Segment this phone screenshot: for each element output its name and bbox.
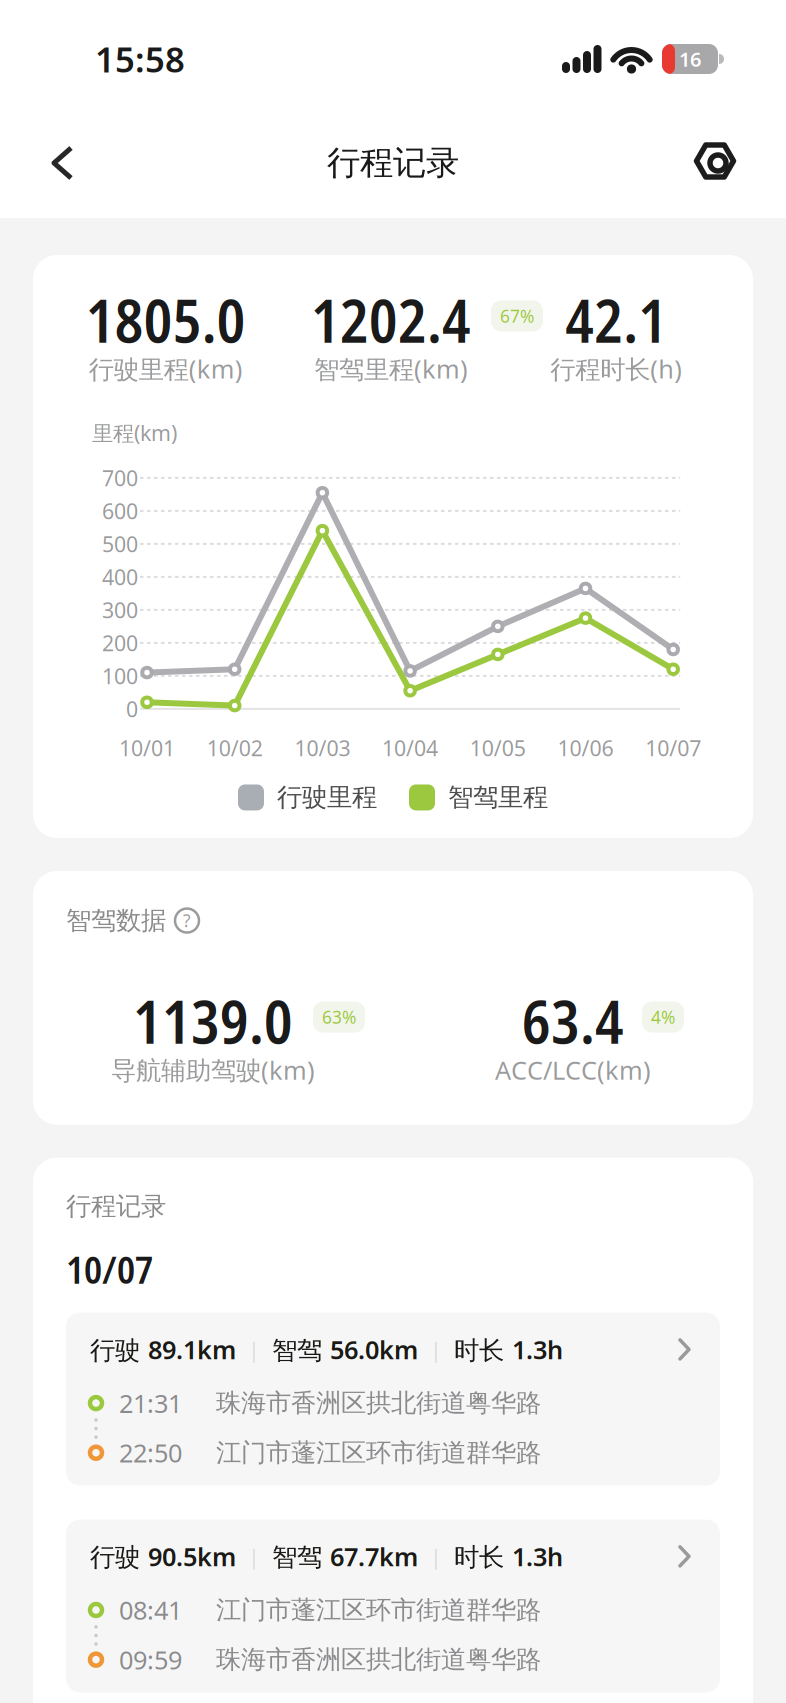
staticText: 10/03 [294, 734, 350, 762]
staticText: 300 [102, 596, 138, 624]
staticText: 行驶里程(km) [89, 352, 243, 385]
staticText: 导航辅助驾驶(km) [111, 1053, 315, 1087]
staticText: 200 [102, 629, 138, 657]
staticText: 10/04 [382, 734, 438, 762]
staticText: 100 [102, 662, 138, 690]
staticText: 1139.0 [133, 981, 293, 1061]
staticText: 行程记录 [66, 1191, 166, 1222]
staticText: | [430, 1542, 442, 1570]
staticText: 1805.0 [86, 280, 246, 360]
staticText: | [248, 1335, 260, 1364]
staticText: 10/07 [645, 734, 701, 762]
staticText: 10/06 [557, 734, 613, 762]
staticText: 0 [126, 695, 138, 723]
staticText: | [430, 1335, 442, 1364]
staticText: 江门市蓬江区环市街道群华路 [216, 1437, 541, 1468]
staticText: 行程时长(h) [550, 352, 682, 385]
staticText: 63.4 [522, 981, 624, 1061]
button[interactable] [696, 144, 786, 182]
button[interactable] [0, 146, 73, 180]
staticText: ? [183, 909, 191, 932]
staticText: 09:59 [119, 1643, 182, 1676]
staticText: 智驾 56.0km [272, 1333, 418, 1366]
staticText: 行驶里程 [277, 782, 377, 813]
staticText: 16 [679, 46, 701, 72]
staticText: 珠海市香洲区拱北街道粤华路 [216, 1387, 541, 1419]
staticText: 4% [651, 1006, 675, 1029]
staticText: 1202.4 [311, 280, 471, 360]
staticText: 08:41 [119, 1593, 182, 1627]
staticText: 智驾数据 [66, 905, 166, 936]
staticText: 珠海市香洲区拱北街道粤华路 [216, 1644, 541, 1675]
staticText: 500 [102, 530, 138, 558]
staticText: 15:58 [95, 36, 185, 82]
staticText: 智驾里程(km) [314, 352, 468, 385]
staticText: 行驶 90.5km [90, 1539, 236, 1573]
button[interactable]: ? [175, 909, 199, 933]
staticText: ACC/LCC(km) [495, 1053, 651, 1087]
staticText: 江门市蓬江区环市街道群华路 [216, 1594, 541, 1625]
staticText: 智驾里程 [448, 782, 548, 813]
staticText: 400 [102, 563, 138, 591]
staticText: 时长 1.3h [454, 1333, 563, 1366]
staticText: 21:31 [119, 1386, 182, 1420]
button[interactable]: 行驶 90.5km [66, 1519, 720, 1692]
button[interactable]: 行驶 89.1km [66, 1313, 720, 1485]
staticText: 10/07 [66, 1244, 153, 1295]
staticText: 行程记录 [327, 142, 459, 183]
staticText: 600 [102, 497, 138, 525]
staticText: 时长 1.3h [454, 1539, 563, 1573]
staticText: | [248, 1542, 260, 1570]
staticText: 10/01 [119, 734, 175, 762]
staticText: 里程(km) [92, 418, 177, 447]
staticText: 行驶 89.1km [90, 1333, 236, 1366]
staticText: 700 [102, 464, 138, 492]
staticText: 10/05 [470, 734, 526, 762]
staticText: 10/02 [207, 734, 263, 762]
staticText: 63% [322, 1006, 356, 1029]
staticText: 22:50 [119, 1436, 182, 1469]
staticText: 智驾 67.7km [272, 1539, 418, 1573]
staticText: 67% [500, 304, 534, 327]
staticText: 42.1 [565, 280, 667, 360]
